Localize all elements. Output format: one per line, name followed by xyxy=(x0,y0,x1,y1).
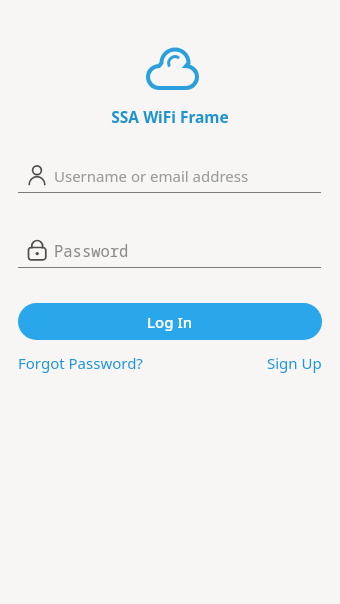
staticText: Log In xyxy=(147,312,193,332)
button[interactable]: Sign Up xyxy=(267,353,322,373)
button[interactable]: Username or email address xyxy=(54,166,249,186)
button[interactable]: Forgot Password? xyxy=(18,353,143,373)
staticText: SSA WiFi Frame xyxy=(0,106,340,127)
button[interactable]: Password xyxy=(54,240,129,261)
staticText: Forgot Password? xyxy=(18,353,143,373)
staticText: Sign Up xyxy=(267,353,322,373)
button[interactable]: Log In xyxy=(18,303,322,340)
